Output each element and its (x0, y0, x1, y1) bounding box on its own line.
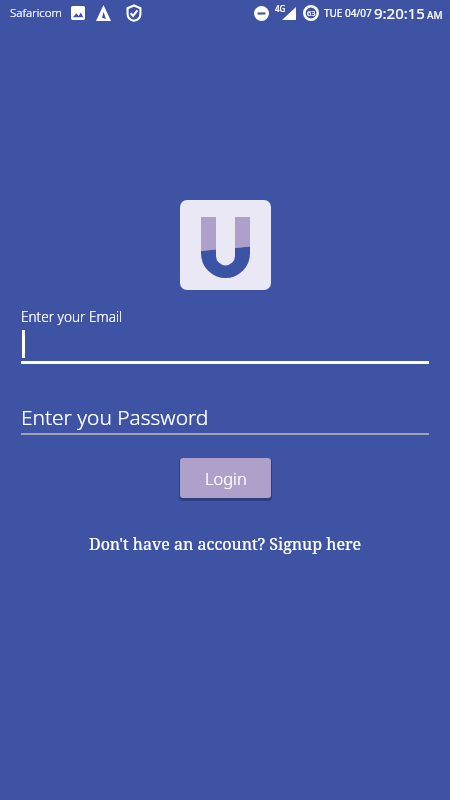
button[interactable]: Don't have an account? Signup here (89, 533, 362, 555)
other: Do not disturb (254, 6, 269, 21)
other: Security (127, 5, 141, 21)
staticText: AM (427, 8, 443, 22)
staticText: 04/07 (345, 6, 372, 20)
button[interactable]: Enter you Password (21, 402, 429, 435)
staticText: Enter you Password (21, 403, 209, 431)
button[interactable]: Enter your Email (21, 303, 429, 364)
staticText: Enter your Email (21, 307, 123, 326)
staticText: 4G (275, 3, 286, 14)
other: Screenshot (71, 6, 85, 20)
staticText: 9:20:15 (374, 3, 425, 23)
staticText: 63 (307, 8, 316, 18)
staticText: Don't have an account? Signup here (89, 533, 362, 555)
button[interactable]: Login (180, 458, 271, 498)
other: App (96, 5, 111, 21)
staticText: TUE (324, 6, 343, 20)
staticText: Login (205, 467, 247, 489)
staticText: Safaricom (10, 5, 62, 21)
